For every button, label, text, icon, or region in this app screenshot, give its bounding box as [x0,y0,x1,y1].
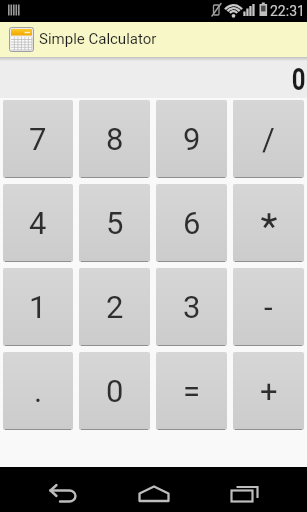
staticText: + [260,373,278,409]
button[interactable] [108,467,199,512]
button[interactable]: 5 [79,184,150,262]
button[interactable]: 3 [156,268,227,346]
button[interactable]: = [156,352,227,430]
button[interactable] [233,184,304,262]
staticText: - [264,289,273,325]
button[interactable]: + [233,352,304,430]
staticText: 1 [29,289,47,325]
button[interactable]: . [3,352,73,430]
staticText: Simple Calculator [39,30,157,48]
staticText: 0 [292,60,306,98]
button[interactable]: 2 [79,268,150,346]
button[interactable]: 9 [156,100,227,178]
staticText: 5 [106,205,124,241]
staticText: 22:31 [270,3,305,19]
staticText: 9 [183,121,201,157]
staticText: / [262,121,275,157]
staticText: . [34,373,43,409]
staticText: 0 [106,373,124,409]
button[interactable] [199,467,290,512]
button[interactable]: 0 [79,352,150,430]
button[interactable] [17,467,108,512]
staticText: 7 [29,121,47,157]
staticText: 8 [106,121,124,157]
staticText: 4 [29,205,47,241]
staticText: = [183,373,201,409]
button[interactable]: 7 [3,100,73,178]
button[interactable]: - [233,268,304,346]
button[interactable]: 6 [156,184,227,262]
button[interactable]: 8 [79,100,150,178]
staticText: 3 [183,289,201,325]
staticText: 2 [106,289,124,325]
button[interactable]: 4 [3,184,73,262]
staticText: 6 [183,205,201,241]
button[interactable]: / [233,100,304,178]
button[interactable]: 1 [3,268,73,346]
